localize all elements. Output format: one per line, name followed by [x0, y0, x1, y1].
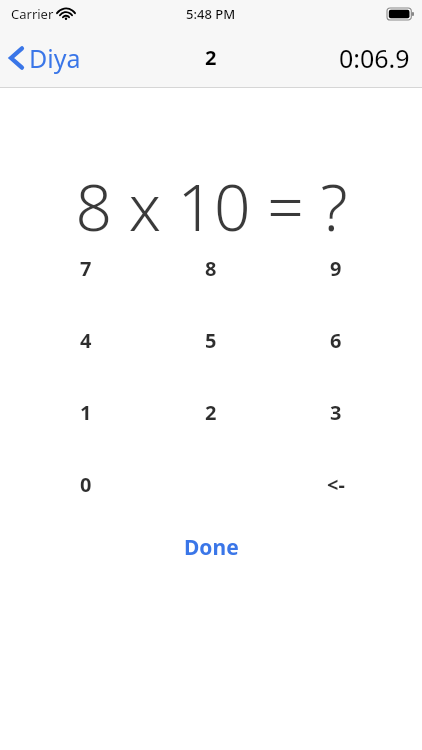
staticText: 4	[80, 327, 92, 353]
button[interactable]: 6	[304, 315, 368, 365]
button[interactable]: 4	[54, 315, 118, 365]
staticText: 7	[80, 255, 92, 281]
staticText: Done	[184, 533, 239, 562]
button[interactable]: Done	[162, 523, 261, 572]
staticText: 9	[330, 255, 342, 281]
staticText: Diya	[29, 41, 81, 75]
staticText: 0	[80, 471, 92, 497]
staticText: 0:06.9	[339, 41, 410, 75]
button[interactable]: 2	[179, 387, 243, 437]
staticText: 8 x 10 = ?	[75, 163, 348, 241]
staticText: 1	[80, 399, 92, 425]
button[interactable]: Diya	[0, 33, 93, 83]
button[interactable]: 0	[54, 459, 118, 509]
staticText: <-	[327, 471, 345, 497]
button[interactable]: 9	[304, 243, 368, 293]
staticText: 2	[205, 44, 217, 71]
staticText: 5:48 PM	[186, 5, 236, 23]
button[interactable]: 7	[54, 243, 118, 293]
button[interactable]: 8	[179, 243, 243, 293]
staticText: 3	[330, 399, 342, 425]
button[interactable]: 5	[179, 315, 243, 365]
staticText: 2	[205, 399, 217, 425]
button[interactable]: Backspace	[301, 459, 371, 509]
staticText: Carrier	[11, 5, 54, 23]
staticText: 5	[205, 327, 217, 353]
button[interactable]: 3	[304, 387, 368, 437]
staticText: 6	[330, 327, 342, 353]
button[interactable]: 1	[54, 387, 118, 437]
staticText: 8	[205, 255, 217, 281]
